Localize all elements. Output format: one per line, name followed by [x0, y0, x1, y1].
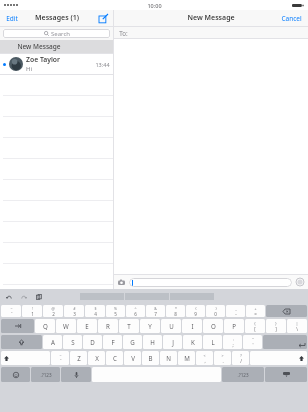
button[interactable]: New Message	[0, 40, 113, 53]
button[interactable]: Undo	[5, 293, 13, 301]
button[interactable]: $	[85, 305, 105, 317]
staticText: =	[254, 311, 257, 317]
button[interactable]: |	[287, 319, 307, 333]
staticText: "	[252, 337, 254, 342]
button[interactable]: W	[56, 319, 76, 333]
button[interactable]: @	[43, 305, 63, 317]
button[interactable]: I	[182, 319, 202, 333]
button[interactable]: Camera	[117, 278, 126, 287]
button[interactable]: Redo	[20, 293, 28, 301]
staticText: X	[95, 354, 99, 362]
button[interactable]: X	[88, 351, 105, 365]
button[interactable]: Edit	[3, 12, 21, 25]
button[interactable]: Paste	[35, 293, 43, 301]
button[interactable]: L	[203, 335, 222, 349]
staticText: 6	[134, 311, 137, 317]
staticText: -	[235, 311, 237, 317]
staticText: ^	[134, 306, 137, 311]
button[interactable]: Tab	[1, 319, 34, 333]
button[interactable]: ^	[126, 305, 145, 317]
button[interactable]: M	[178, 351, 195, 365]
button[interactable]: #	[64, 305, 84, 317]
staticText: :	[233, 337, 234, 342]
staticText: Zoe Taylor	[26, 55, 60, 64]
button[interactable]: A	[43, 335, 62, 349]
button[interactable]: Y	[140, 319, 160, 333]
button[interactable]: :	[223, 335, 242, 349]
staticText: N	[166, 354, 171, 362]
staticText: ;	[232, 342, 234, 348]
staticText: *	[175, 306, 177, 311]
staticText: \	[296, 326, 298, 332]
button[interactable]: U	[161, 319, 181, 333]
staticText: To:	[119, 29, 128, 37]
button[interactable]: P	[224, 319, 244, 333]
button[interactable]: H	[143, 335, 162, 349]
staticText: _	[235, 306, 237, 311]
button[interactable]: R	[98, 319, 118, 333]
staticText: 1	[31, 311, 34, 317]
button[interactable]: ?	[232, 351, 249, 365]
button[interactable]: Compose new message	[96, 11, 111, 26]
button[interactable]: Cancel	[278, 12, 305, 25]
button[interactable]: Q	[35, 319, 55, 333]
button[interactable]: Send	[295, 277, 305, 287]
staticText: B	[148, 354, 153, 362]
button[interactable]: <	[196, 351, 213, 365]
button[interactable]: Caps lock	[1, 335, 42, 349]
button[interactable]: ~	[51, 351, 69, 365]
button[interactable]: _	[226, 305, 245, 317]
button[interactable]: (	[186, 305, 205, 317]
button[interactable]: &	[146, 305, 165, 317]
staticText: 4	[94, 311, 97, 317]
button[interactable]: C	[106, 351, 123, 365]
button[interactable]: K	[183, 335, 202, 349]
button[interactable]: O	[203, 319, 223, 333]
button[interactable]: )	[206, 305, 225, 317]
button[interactable]: Shift	[1, 351, 50, 365]
button[interactable]: G	[123, 335, 142, 349]
button[interactable]: %	[106, 305, 125, 317]
button[interactable]: B	[142, 351, 159, 365]
button[interactable]: >	[214, 351, 231, 365]
button[interactable]: {	[245, 319, 265, 333]
button[interactable]: Z	[70, 351, 87, 365]
staticText: (	[195, 306, 197, 311]
button[interactable]: T	[119, 319, 139, 333]
button[interactable]: ~	[1, 305, 21, 317]
staticText: U	[169, 322, 174, 330]
staticText: ~	[59, 353, 62, 358]
button[interactable]: Backspace	[266, 305, 307, 317]
button[interactable]: "	[243, 335, 262, 349]
staticText: |	[296, 321, 298, 326]
button[interactable]: E	[77, 319, 97, 333]
staticText: Q	[43, 322, 48, 330]
button[interactable]: .?123	[31, 367, 60, 382]
button[interactable]: Shift	[250, 351, 307, 365]
button[interactable]: .?123	[222, 367, 264, 382]
button[interactable]: D	[83, 335, 102, 349]
button[interactable]	[129, 278, 292, 287]
button[interactable]: Emoji	[1, 367, 30, 382]
button[interactable]: Hide keyboard	[265, 367, 307, 382]
button[interactable]: }	[266, 319, 286, 333]
button[interactable]: Search	[3, 29, 110, 38]
staticText: 7	[154, 311, 157, 317]
button[interactable]: +	[246, 305, 265, 317]
button[interactable]: S	[63, 335, 82, 349]
button[interactable]: Zoe Taylor	[0, 54, 113, 74]
button[interactable]: J	[163, 335, 182, 349]
staticText: <	[203, 353, 206, 358]
button[interactable]: Return	[263, 335, 307, 349]
button[interactable]: F	[103, 335, 122, 349]
button[interactable]: V	[124, 351, 141, 365]
button[interactable]: *	[166, 305, 185, 317]
button[interactable]: N	[160, 351, 177, 365]
staticText: .	[222, 358, 224, 364]
button[interactable]: !	[22, 305, 42, 317]
button[interactable]: Dictation	[61, 367, 91, 382]
